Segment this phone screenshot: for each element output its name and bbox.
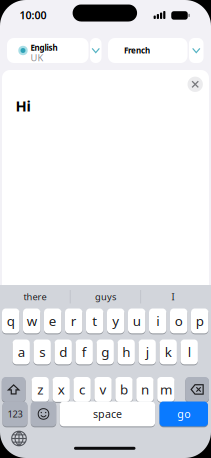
button[interactable]: a <box>12 339 30 364</box>
button[interactable]: e <box>44 308 61 333</box>
button[interactable]: English <box>7 38 88 63</box>
button[interactable]: u <box>128 308 145 333</box>
button[interactable]: go <box>159 401 208 426</box>
staticText: h <box>122 343 130 361</box>
button[interactable] <box>187 77 203 92</box>
staticText: v <box>99 381 106 398</box>
staticText: go <box>177 407 190 421</box>
button[interactable]: b <box>115 377 133 402</box>
staticText: n <box>141 381 149 398</box>
button[interactable]: guys <box>70 285 140 308</box>
staticText: p <box>196 312 204 330</box>
staticText: b <box>120 381 128 398</box>
staticText: a <box>18 343 25 361</box>
button[interactable]: l <box>180 339 198 364</box>
button[interactable]: r <box>65 308 82 333</box>
button[interactable]: z <box>31 377 49 402</box>
staticText: j <box>146 343 149 361</box>
button[interactable]: y <box>107 308 124 333</box>
staticText: s <box>39 343 45 361</box>
staticText: u <box>133 312 141 330</box>
button[interactable]: v <box>94 377 112 402</box>
staticText: f <box>82 343 87 361</box>
staticText: d <box>59 343 67 361</box>
button[interactable]: 123 <box>2 401 27 426</box>
button[interactable]: space <box>60 401 155 426</box>
staticText: space <box>93 407 122 421</box>
staticText: guys <box>95 291 116 303</box>
staticText: French <box>124 45 150 56</box>
button[interactable]: x <box>52 377 70 402</box>
button[interactable] <box>185 377 209 402</box>
button[interactable]: French <box>108 38 187 63</box>
button[interactable] <box>31 401 56 426</box>
button[interactable]: m <box>157 377 175 402</box>
button[interactable] <box>189 38 203 63</box>
button[interactable]: h <box>117 339 135 364</box>
staticText: m <box>160 381 172 398</box>
staticText: English <box>30 42 57 53</box>
staticText: g <box>101 343 109 361</box>
staticText: x <box>58 381 65 398</box>
staticText: w <box>27 312 37 330</box>
button[interactable]: I <box>141 285 205 308</box>
staticText: y <box>112 312 119 330</box>
staticText: i <box>156 312 159 330</box>
button[interactable]: s <box>33 339 51 364</box>
button[interactable]: d <box>54 339 72 364</box>
staticText: t <box>92 312 97 330</box>
button[interactable]: n <box>136 377 154 402</box>
staticText: q <box>7 312 15 330</box>
button[interactable]: g <box>96 339 114 364</box>
button[interactable]: there <box>0 285 70 308</box>
staticText: Hi <box>15 96 30 115</box>
staticText: 123 <box>7 408 22 420</box>
button[interactable]: o <box>170 308 187 333</box>
button[interactable]: w <box>23 308 40 333</box>
staticText: there <box>23 291 46 303</box>
button[interactable]: f <box>75 339 93 364</box>
staticText: e <box>49 312 57 330</box>
staticText: I <box>171 291 174 303</box>
button[interactable] <box>90 38 101 63</box>
button[interactable]: q <box>2 308 19 333</box>
staticText: r <box>71 312 77 330</box>
button[interactable]: j <box>138 339 156 364</box>
staticText: 10:00 <box>19 8 46 22</box>
button[interactable]: p <box>191 308 208 333</box>
staticText: z <box>37 381 43 398</box>
staticText: UK <box>30 51 43 64</box>
button[interactable]: k <box>159 339 177 364</box>
button[interactable] <box>2 377 25 402</box>
button[interactable]: i <box>149 308 166 333</box>
staticText: l <box>188 343 191 361</box>
staticText: c <box>79 381 85 398</box>
button[interactable] <box>12 431 26 446</box>
button[interactable]: c <box>73 377 91 402</box>
staticText: o <box>175 312 183 330</box>
staticText: k <box>165 343 172 361</box>
button[interactable]: t <box>86 308 103 333</box>
